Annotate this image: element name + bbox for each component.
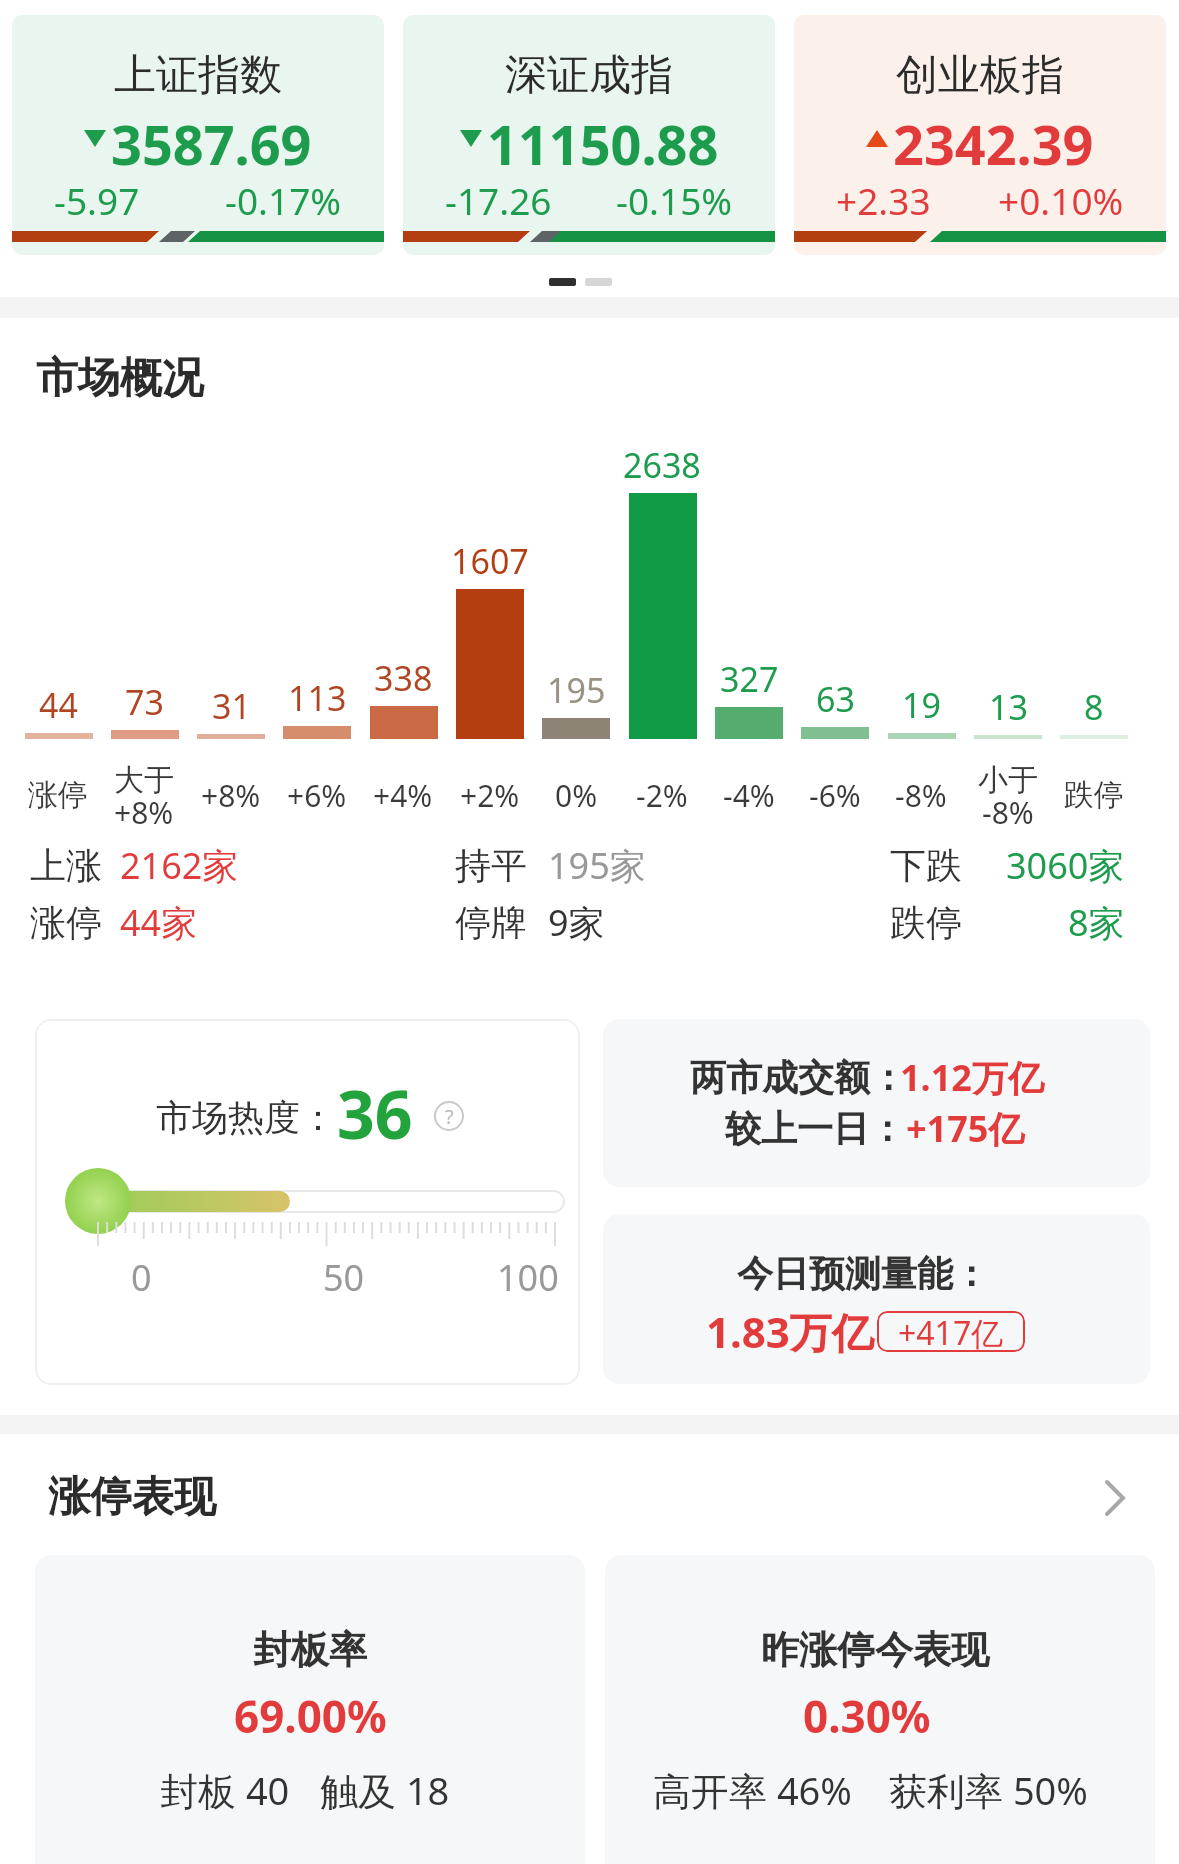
staticText: 停牌 — [455, 900, 527, 945]
staticText: +8% — [201, 775, 261, 815]
staticText: 跌停 — [890, 900, 962, 945]
button[interactable] — [605, 1555, 1155, 1864]
staticText: 50 — [323, 1253, 365, 1302]
staticText: 跌停 — [1064, 776, 1124, 814]
staticText: +0.10% — [998, 175, 1124, 219]
staticText: 上涨 — [30, 843, 102, 888]
staticText: 44 — [39, 682, 78, 728]
button[interactable] — [35, 1019, 580, 1385]
staticText: 涨停表现 — [48, 1471, 216, 1524]
staticText: +417亿 — [898, 1311, 1004, 1352]
staticText: -17.26 — [445, 175, 552, 219]
staticText: 1607 — [451, 538, 529, 584]
staticText: 封板 40 — [160, 1764, 290, 1816]
staticText: 36 — [337, 1068, 413, 1158]
staticText: 今日预测量能： — [737, 1251, 989, 1296]
staticText: +175亿 — [906, 1104, 1025, 1153]
staticText: 市场热度： — [156, 1095, 336, 1140]
button[interactable]: 深证成指 — [403, 15, 775, 255]
staticText: 较上一日： — [725, 1106, 905, 1151]
staticText: 涨停 — [28, 776, 88, 814]
staticText: +4% — [373, 775, 433, 815]
staticText: 上证指数 — [114, 49, 282, 102]
staticText: 触及 18 — [320, 1764, 450, 1816]
button[interactable]: 创业板指 — [794, 15, 1166, 255]
staticText: 3587.69 — [111, 107, 312, 169]
staticText: 0.30% — [803, 1686, 931, 1746]
staticText: 封板率 — [253, 1626, 367, 1674]
button[interactable]: 涨停表现 — [0, 1460, 1179, 1535]
staticText: 下跌 — [890, 843, 962, 888]
staticText: 持平 — [455, 843, 527, 888]
staticText: 1.12万亿 — [900, 1053, 1044, 1102]
staticText: 0 — [131, 1253, 152, 1302]
staticText: 大于 — [114, 761, 174, 799]
staticText: 8家 — [1068, 898, 1125, 947]
staticText: 创业板指 — [896, 49, 1064, 102]
staticText: 11150.88 — [487, 107, 719, 169]
button[interactable] — [35, 1555, 585, 1864]
staticText: 1.83万亿 — [706, 1303, 874, 1360]
staticText: 69.00% — [234, 1686, 387, 1746]
button[interactable] — [603, 1019, 1150, 1187]
staticText: -0.17% — [225, 175, 342, 219]
staticText: 深证成指 — [505, 49, 673, 102]
staticText: 高开率 46% — [653, 1764, 852, 1816]
staticText: -0.15% — [616, 175, 733, 219]
staticText: -4% — [723, 775, 775, 815]
staticText: 两市成交额： — [690, 1055, 906, 1100]
staticText: -8% — [982, 792, 1034, 832]
button[interactable]: 上证指数 — [12, 15, 384, 255]
staticText: 8 — [1084, 684, 1104, 730]
staticText: 113 — [288, 675, 347, 721]
staticText: 获利率 50% — [889, 1764, 1088, 1816]
staticText: +8% — [114, 792, 174, 832]
staticText: 3060家 — [1006, 841, 1125, 890]
staticText: 195 — [547, 667, 606, 713]
staticText: 73 — [125, 679, 164, 725]
staticText: 2638 — [623, 442, 701, 488]
staticText: 338 — [374, 655, 433, 701]
staticText: +2.33 — [836, 175, 931, 219]
staticText: 小于 — [978, 761, 1038, 799]
staticText: 100 — [497, 1253, 559, 1302]
staticText: 195家 — [548, 841, 646, 890]
staticText: 327 — [720, 656, 779, 702]
staticText: -8% — [895, 775, 947, 815]
staticText: 2162家 — [120, 841, 239, 890]
staticText: 31 — [212, 683, 251, 729]
staticText: 0% — [555, 775, 598, 815]
button[interactable] — [603, 1214, 1150, 1384]
staticText: 63 — [816, 676, 855, 722]
staticText: -5.97 — [54, 175, 140, 219]
staticText: 13 — [989, 684, 1028, 730]
staticText: ? — [445, 1103, 454, 1130]
staticText: -6% — [809, 775, 861, 815]
staticText: +2% — [460, 775, 520, 815]
staticText: 9家 — [548, 898, 605, 947]
staticText: 19 — [902, 682, 941, 728]
staticText: +6% — [287, 775, 347, 815]
staticText: -2% — [636, 775, 688, 815]
staticText: 市场概况 — [36, 352, 204, 405]
staticText: 涨停 — [30, 900, 102, 945]
staticText: 昨涨停今表现 — [761, 1626, 989, 1674]
staticText: 2342.39 — [893, 107, 1094, 169]
staticText: 44家 — [120, 898, 198, 947]
